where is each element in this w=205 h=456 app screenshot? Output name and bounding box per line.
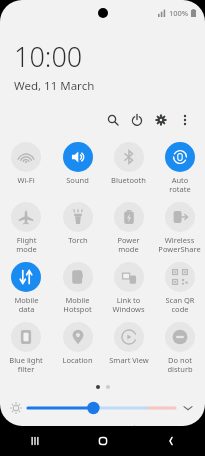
staticText: Power mode (117, 235, 140, 254)
staticText: Mobile Hotspot (63, 295, 92, 314)
button[interactable]: Auto rotate (154, 141, 205, 201)
staticText: Link to Windows (112, 295, 145, 314)
button[interactable]: Flight mode (0, 201, 52, 261)
staticText: Bluetooth (111, 175, 146, 185)
staticText: Smart View (109, 355, 149, 365)
button[interactable]: Search (101, 108, 125, 132)
button[interactable]: Home (69, 426, 137, 456)
button[interactable]: Devices (140, 425, 191, 426)
button[interactable]: Wireless PowerShare (154, 201, 205, 261)
button[interactable]: Torch (52, 201, 103, 261)
staticText: Mobile data (14, 295, 39, 314)
button[interactable]: Link to Windows (103, 261, 154, 321)
staticText: Do not disturb (167, 355, 193, 374)
button[interactable]: Smart View (103, 321, 154, 381)
button[interactable]: Back (137, 426, 205, 456)
button[interactable]: Recents (0, 426, 69, 456)
staticText: Wi-Fi (17, 175, 35, 185)
button[interactable]: Location (52, 321, 103, 381)
button[interactable]: Do not disturb (154, 321, 205, 381)
button[interactable]: Blue light filter (0, 321, 52, 381)
staticText: Blue light filter (9, 355, 43, 374)
button[interactable]: Mobile Hotspot (52, 261, 103, 321)
staticText: Torch (68, 235, 88, 245)
staticText: Sound (66, 175, 89, 185)
button[interactable]: Scan QR code (154, 261, 205, 321)
button[interactable]: Wi-Fi (0, 141, 52, 201)
button[interactable] (28, 399, 175, 417)
staticText: Auto rotate (169, 175, 191, 194)
button[interactable]: Settings (149, 108, 173, 132)
button[interactable]: Power off (125, 108, 149, 132)
button[interactable]: More options (173, 108, 197, 132)
staticText: Wed, 11 March (14, 78, 95, 94)
staticText: Scan QR code (165, 295, 195, 314)
staticText: 100% (169, 8, 189, 18)
button[interactable]: Bluetooth (103, 141, 154, 201)
staticText: Location (62, 355, 93, 365)
staticText: Flight mode (16, 235, 37, 254)
button[interactable]: Mobile data (0, 261, 52, 321)
button[interactable]: Expand brightness (181, 401, 195, 415)
button[interactable]: Power mode (103, 201, 154, 261)
staticText: 10:00 (14, 38, 83, 75)
staticText: Wireless PowerShare (158, 235, 201, 254)
button[interactable]: Sound (52, 141, 103, 201)
